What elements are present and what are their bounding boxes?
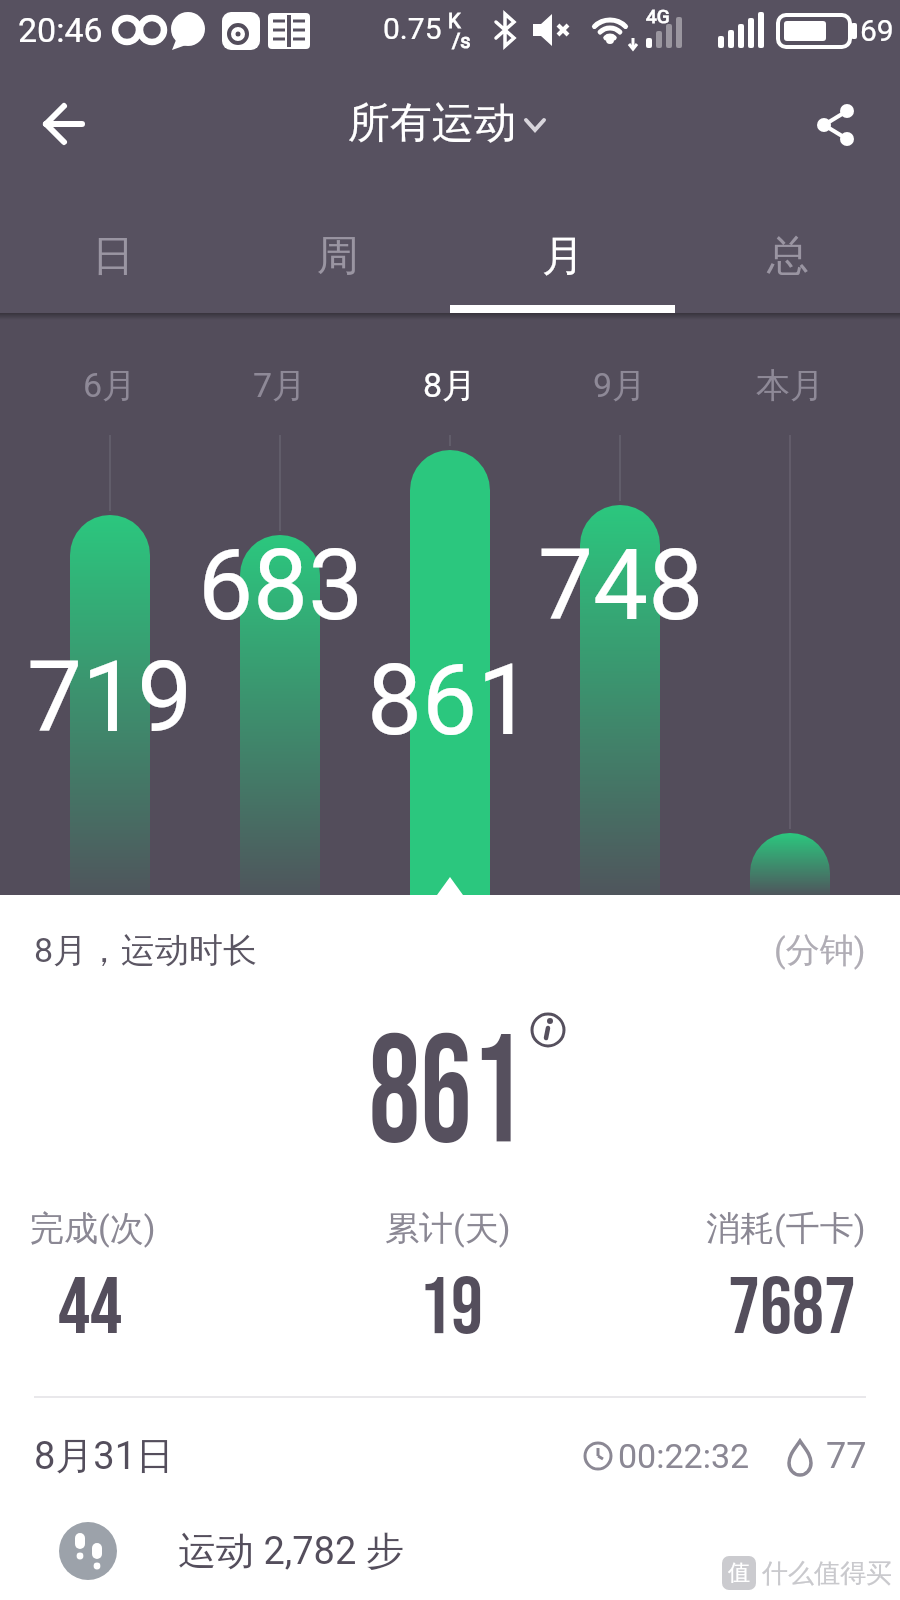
button[interactable] [28, 94, 94, 154]
staticText: 8月，运动时长 [34, 929, 258, 972]
staticText: K [448, 9, 461, 32]
staticText: 运动 2,782 步 [178, 1527, 404, 1575]
staticText: 7月 [253, 364, 307, 407]
staticText: 6月 [83, 364, 137, 407]
staticText: 4G [646, 5, 670, 27]
staticText: 683 [198, 528, 364, 643]
staticText: 累计(天) [385, 1207, 511, 1250]
button[interactable]: 日 [0, 192, 225, 320]
staticText: 77 [826, 1435, 867, 1477]
button[interactable]: 861 [346, 1003, 546, 1183]
staticText: 完成(次) [30, 1207, 156, 1250]
staticText: 周 [317, 230, 359, 283]
staticText: 月 [542, 230, 584, 283]
staticText: 748 [538, 528, 704, 643]
staticText: (分钟) [774, 929, 866, 972]
staticText: 861 [369, 1003, 523, 1183]
button[interactable] [805, 95, 875, 155]
staticText: 什么值得买 [762, 1557, 892, 1590]
staticText: 44 [58, 1261, 122, 1357]
staticText: 总 [767, 230, 809, 283]
staticText: 9月 [593, 364, 647, 407]
button[interactable]: 周 [225, 192, 450, 320]
button[interactable]: 所有运动 [348, 97, 552, 150]
staticText: 69 [860, 13, 894, 48]
staticText: 本月 [756, 364, 824, 407]
staticText: 日 [92, 230, 134, 283]
staticText: 719 [27, 640, 193, 755]
button[interactable] [0, 1412, 900, 1502]
staticText: 00:22:32 [618, 1436, 750, 1476]
staticText: 20:46 [18, 10, 103, 50]
button[interactable]: 总 [675, 192, 900, 320]
button[interactable] [40, 1503, 900, 1599]
staticText: 7687 [728, 1261, 856, 1357]
staticText: 消耗(千卡) [706, 1207, 866, 1250]
button[interactable]: 月 [450, 192, 675, 320]
staticText: 8月31日 [34, 1432, 175, 1480]
staticText: 所有运动 [348, 97, 516, 150]
staticText: /s [452, 29, 471, 52]
staticText: 19 [419, 1261, 483, 1357]
staticText: 8月 [423, 364, 477, 407]
staticText: 0.75 [383, 11, 442, 46]
staticText: 值 [728, 1559, 750, 1587]
staticText: 861 [367, 643, 533, 758]
